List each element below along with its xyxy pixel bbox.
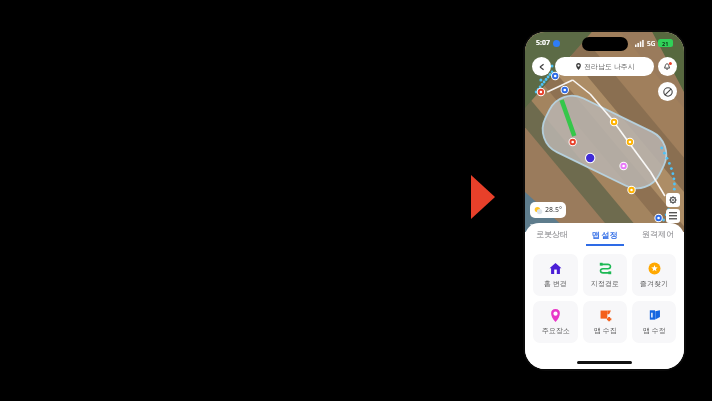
staticText: 주요장소 [542, 326, 570, 335]
staticText: 100m [530, 223, 541, 228]
button[interactable]: Play [471, 175, 495, 219]
button[interactable]: 28.5° [534, 202, 562, 218]
button[interactable]: Map settings [666, 193, 680, 207]
button[interactable]: 원격제어 [631, 229, 684, 245]
staticText: 홈 변경 [544, 279, 567, 289]
staticText: 맵 수정 [643, 326, 666, 336]
button[interactable]: 전라남도 나주시 [555, 57, 654, 76]
staticText: 전라남도 나주시 [584, 62, 635, 72]
button[interactable]: 즐겨찾기 [632, 254, 676, 296]
button[interactable]: 맵 수정 [632, 301, 676, 343]
staticText: 맵 설정 [591, 229, 618, 240]
staticText: 21 [662, 40, 669, 47]
staticText: 지정경로 [591, 279, 619, 288]
button[interactable]: List view [666, 209, 680, 223]
button[interactable]: 맵 설정 [578, 229, 631, 246]
button[interactable]: 주요장소 [533, 301, 578, 343]
button[interactable]: 맵 수집 [583, 301, 627, 343]
staticText: 맵 수집 [594, 326, 617, 336]
button[interactable]: 로봇상태 [525, 229, 578, 245]
button[interactable]: 지정경로 [583, 254, 627, 296]
staticText: 원격제어 [642, 229, 674, 239]
staticText: 28.5° [545, 205, 562, 215]
staticText: 5G [647, 39, 656, 48]
staticText: 즐겨찾기 [640, 279, 668, 288]
staticText: 5:07 [536, 38, 550, 48]
button[interactable]: 홈 변경 [533, 254, 578, 296]
button[interactable]: Notifications [658, 57, 677, 76]
staticText: 로봇상태 [536, 229, 568, 239]
button[interactable]: Hide layers [658, 82, 677, 101]
button[interactable]: Back [532, 57, 551, 76]
